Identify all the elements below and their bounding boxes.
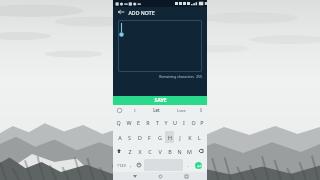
button[interactable]: Let (153, 107, 160, 113)
button[interactable]: X (135, 145, 144, 157)
staticText: N (177, 148, 182, 155)
staticText: Remaining characters (159, 74, 194, 79)
staticText: A (118, 134, 122, 141)
button[interactable]: Love (177, 108, 186, 113)
staticText: Z (128, 148, 132, 155)
staticText: H (168, 134, 172, 141)
staticText: I (134, 108, 136, 113)
button[interactable]: J (175, 131, 184, 143)
staticText: F (148, 134, 151, 141)
button[interactable]: Q (114, 116, 123, 129)
button[interactable]: B (165, 145, 174, 157)
button[interactable]: ?123 (115, 159, 127, 171)
button[interactable]: N (175, 145, 184, 157)
button[interactable]: SAVE (113, 96, 207, 105)
button[interactable]: E (134, 116, 143, 129)
staticText: S (128, 134, 131, 141)
staticText: Q (116, 119, 121, 126)
button[interactable]: I (180, 116, 188, 129)
staticText: K (188, 134, 192, 141)
button[interactable]: V (155, 145, 164, 157)
staticText: T (156, 119, 159, 126)
button[interactable]: A (116, 131, 124, 143)
button[interactable]: Backspace (195, 145, 206, 157)
staticText: Y (164, 119, 168, 126)
staticText: SAVE (154, 97, 167, 104)
staticText: R (146, 119, 150, 126)
button[interactable]: M (185, 145, 194, 157)
button[interactable]: I (134, 108, 136, 113)
staticText: Love (177, 108, 186, 113)
staticText: W (126, 119, 132, 126)
staticText: O (191, 119, 196, 126)
button[interactable]: U (171, 116, 179, 129)
button[interactable]: Back (117, 8, 125, 16)
button[interactable]: Shift (114, 145, 124, 157)
staticText: G (158, 134, 162, 141)
button[interactable]: , (128, 159, 134, 171)
button[interactable]: W (124, 116, 133, 129)
button[interactable]: G (155, 131, 164, 143)
button[interactable]: O (189, 116, 197, 129)
button[interactable]: More suggestions (198, 107, 204, 113)
staticText: U (173, 119, 177, 126)
staticText: P (200, 119, 204, 126)
staticText: . (187, 162, 189, 169)
staticText: ADD NOTE (128, 9, 155, 16)
staticText: X (138, 148, 142, 155)
staticText: D (138, 134, 142, 141)
button[interactable]: Back (131, 172, 139, 180)
button[interactable]: D (135, 131, 144, 143)
button[interactable]: Y (162, 116, 170, 129)
button[interactable]: P (198, 116, 206, 129)
staticText: V (158, 148, 162, 155)
staticText: J (179, 134, 181, 141)
button[interactable]: C (145, 145, 154, 157)
button[interactable]: Home (156, 172, 164, 180)
button[interactable]: T (153, 116, 161, 129)
staticText: 255 (196, 74, 202, 79)
staticText: E (137, 119, 140, 126)
staticText: M (187, 148, 192, 155)
button[interactable]: Enter (192, 159, 205, 171)
staticText: C (148, 148, 152, 155)
button[interactable] (118, 20, 202, 72)
button[interactable]: Z (125, 145, 134, 157)
button[interactable]: K (185, 131, 194, 143)
button[interactable]: Emoji (135, 159, 143, 171)
staticText: ?123 (117, 163, 126, 168)
staticText: , (130, 162, 132, 169)
button[interactable]: L (195, 131, 204, 143)
button[interactable]: Recents (182, 172, 190, 180)
staticText: I (183, 119, 185, 126)
button[interactable]: F (145, 131, 154, 143)
button[interactable]: R (144, 116, 152, 129)
button[interactable]: H (165, 131, 174, 143)
staticText: L (198, 134, 201, 141)
staticText: B (168, 148, 172, 155)
button[interactable]: Google (116, 107, 122, 113)
staticText: Let (153, 107, 160, 113)
button[interactable]: S (125, 131, 134, 143)
button[interactable]: . (184, 159, 191, 171)
